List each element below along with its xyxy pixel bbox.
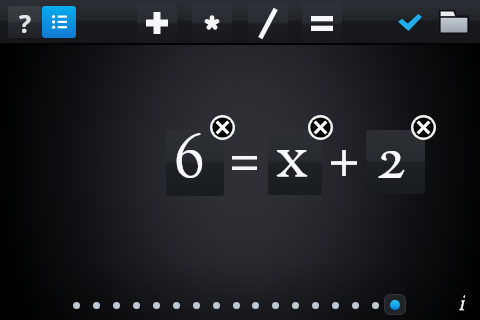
button[interactable]: Term 6 [166,130,224,196]
button[interactable]: Step 5 [147,296,165,314]
button[interactable]: Open saved [436,5,472,39]
button[interactable]: Steps [42,6,76,38]
button[interactable]: Help [8,6,42,38]
button[interactable]: Multiply [192,3,232,43]
button[interactable]: Step 8 [207,296,225,314]
button[interactable]: Step 15 [346,296,364,314]
button[interactable]: Step 4 [127,296,145,314]
button[interactable]: Current step [384,294,406,315]
button[interactable]: Step 13 [306,296,324,314]
button[interactable]: Divide [248,3,288,43]
button[interactable]: Step 2 [87,296,105,314]
staticText: 2 [376,130,406,182]
button[interactable]: Step 3 [107,296,125,314]
button[interactable]: Plus [137,3,177,43]
button[interactable]: Step 9 [227,296,245,314]
button[interactable]: Info [447,288,475,316]
button[interactable]: Step 10 [246,296,264,314]
button[interactable]: Term x [268,130,322,195]
button[interactable]: Delete 2 [410,114,436,140]
button[interactable]: Step 16 [366,296,384,314]
button[interactable]: Step 12 [286,296,304,314]
button[interactable]: Delete 6 [209,114,235,140]
staticText: x [275,130,309,182]
staticText: i [458,288,465,316]
button[interactable]: Step 6 [167,296,185,314]
button[interactable]: Step 11 [266,296,284,314]
button[interactable]: Step 14 [326,296,344,314]
staticText: ? [19,6,31,38]
staticText: 6 [174,130,205,183]
button[interactable]: Accept [392,5,428,39]
button[interactable]: Term 2 [366,130,425,194]
button[interactable]: Step 1 [67,296,85,314]
button[interactable]: Equals [302,3,342,43]
button[interactable]: Step 7 [187,296,205,314]
button[interactable]: Delete x [307,114,333,140]
